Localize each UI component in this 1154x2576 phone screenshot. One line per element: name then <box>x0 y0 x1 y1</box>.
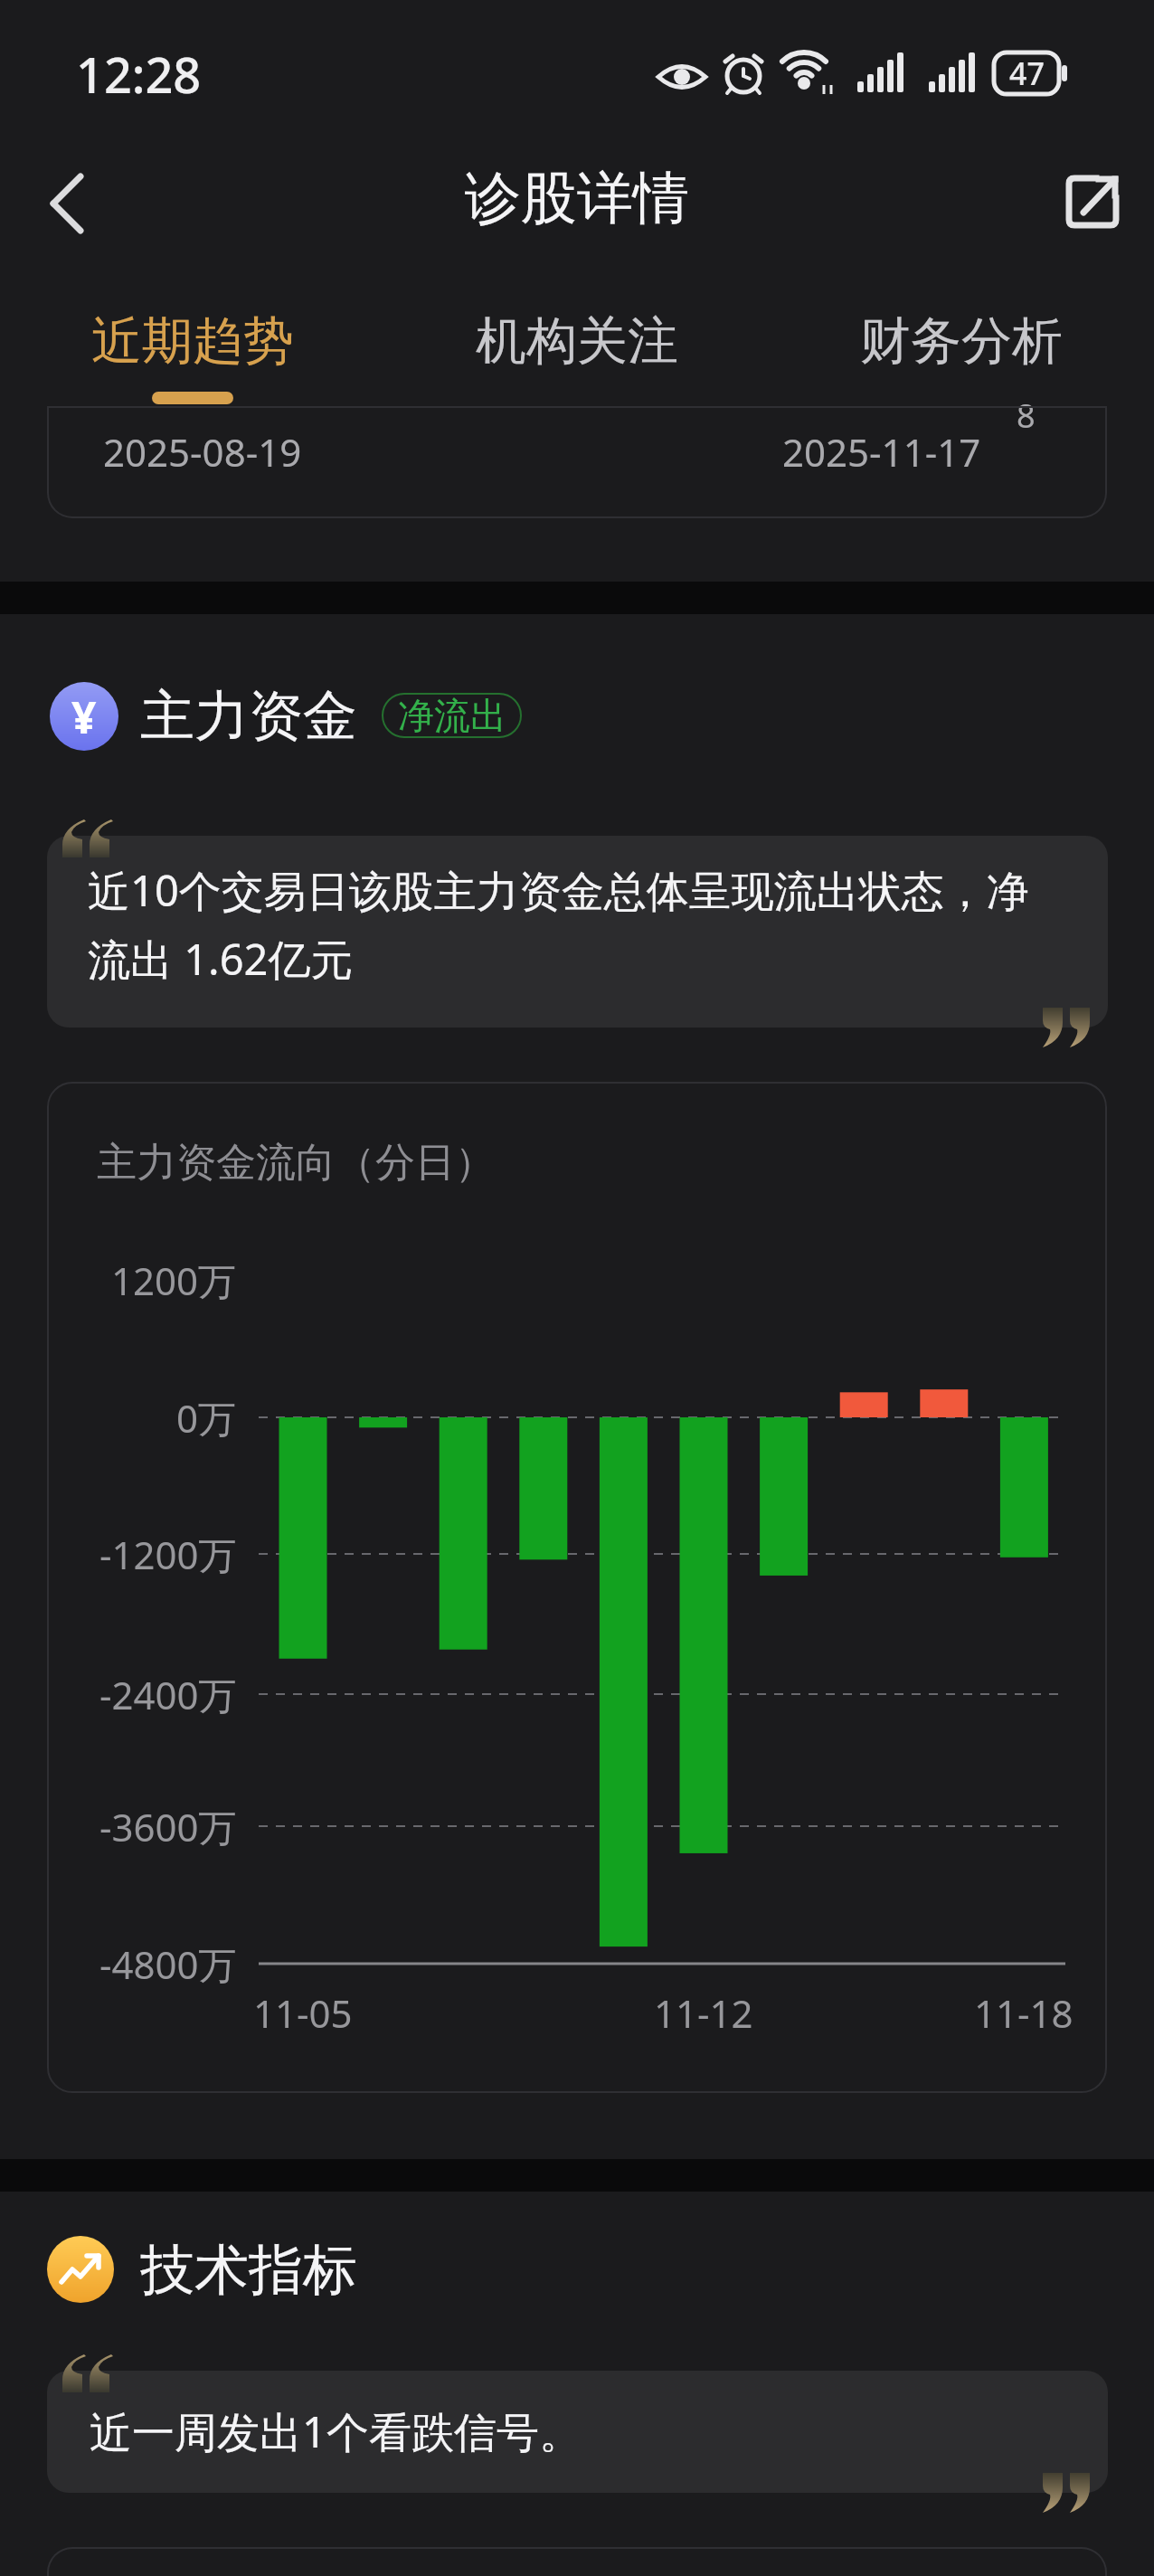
staticText: 8 <box>1017 393 1036 438</box>
staticText: 2025-08-19 <box>103 426 302 478</box>
staticText: 近10个交易日该股主力资金总体呈现流出状态，净 流出 1.62亿元 <box>88 861 1029 988</box>
staticText: -3600万 <box>99 1801 237 1852</box>
button[interactable] <box>27 163 109 244</box>
button[interactable]: 财务分析 <box>769 280 1154 402</box>
staticText: 近期趋势 <box>91 309 294 374</box>
staticText: 主力资金 <box>140 682 357 747</box>
staticText: 11-05 <box>253 1987 353 2038</box>
staticText: 净流出 <box>398 693 506 738</box>
staticText: 11-12 <box>654 1987 753 2038</box>
staticText: -2400万 <box>99 1669 237 1720</box>
staticText: 2025-11-17 <box>782 426 981 478</box>
staticText: 主力资金流向（分日） <box>97 1138 495 1188</box>
staticText: -4800万 <box>99 1938 237 1990</box>
staticText: 0万 <box>176 1392 237 1444</box>
staticText: 11-18 <box>974 1987 1074 2038</box>
button[interactable]: 近期趋势 <box>0 280 385 402</box>
staticText: 财务分析 <box>860 309 1063 374</box>
staticText: 诊股详情 <box>465 163 689 233</box>
staticText: 47 <box>1009 52 1045 94</box>
button[interactable] <box>1049 161 1136 242</box>
button[interactable]: 机构关注 <box>384 280 770 402</box>
staticText: -1200万 <box>99 1529 237 1580</box>
staticText: 机构关注 <box>476 309 678 374</box>
staticText: ¥ <box>71 687 97 746</box>
staticText: 近一周发出1个看跌信号。 <box>90 2402 582 2460</box>
staticText: 12:28 <box>76 41 202 108</box>
staticText: 1200万 <box>111 1255 237 1306</box>
staticText: 技术指标 <box>140 2236 357 2301</box>
